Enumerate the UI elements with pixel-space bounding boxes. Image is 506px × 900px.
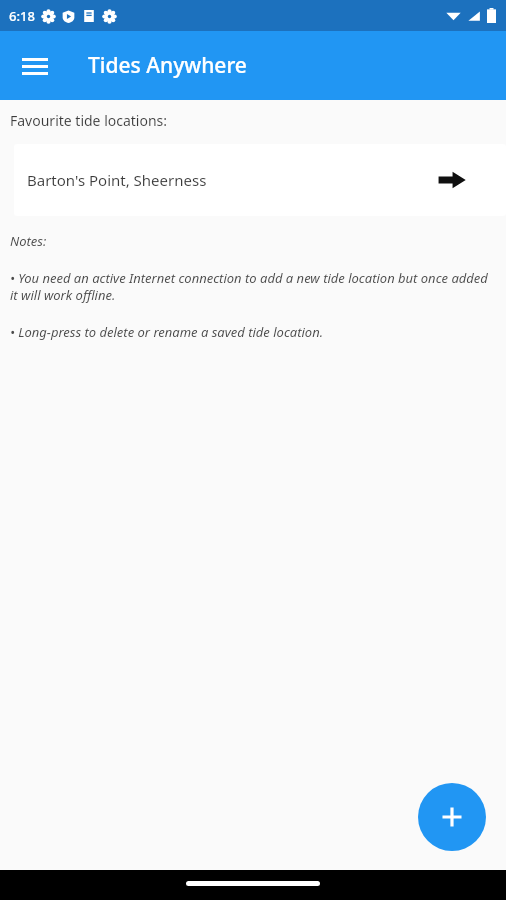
button[interactable]: Open navigation menu: [11, 42, 59, 90]
staticText: Tides Anywhere: [88, 51, 247, 80]
staticText: • Long-press to delete or rename a saved…: [10, 323, 324, 341]
button[interactable]: Add tide location: [418, 783, 486, 851]
staticText: • You need an active Internet connection…: [10, 269, 498, 304]
staticText: Favourite tide locations:: [10, 111, 168, 130]
staticText: Notes:: [10, 232, 47, 250]
button[interactable]: Barton's Point, Sheerness: [14, 144, 506, 216]
staticText: Barton's Point, Sheerness: [27, 170, 207, 190]
staticText: 6:18: [9, 7, 35, 25]
